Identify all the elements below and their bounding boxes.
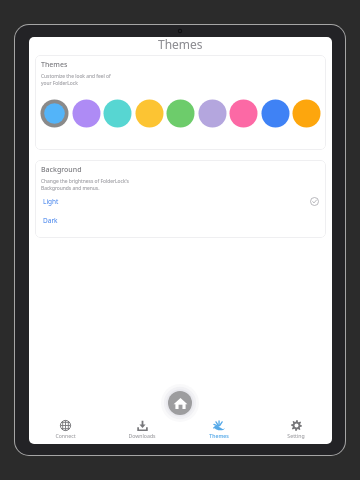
- staticText: Setting: [287, 432, 305, 439]
- staticText: Downloads: [128, 432, 156, 439]
- button[interactable]: [103, 99, 132, 128]
- staticText: Themes: [209, 432, 229, 439]
- staticText: Light: [43, 197, 59, 206]
- staticText: Connect: [55, 432, 76, 439]
- button[interactable]: [135, 99, 164, 128]
- button[interactable]: [198, 99, 227, 128]
- button[interactable]: Setting: [267, 415, 325, 443]
- button[interactable]: Downloads: [113, 415, 171, 443]
- staticText: Customize the look and feel of your Fold…: [41, 73, 111, 87]
- button[interactable]: Home: [168, 391, 192, 415]
- button[interactable]: Themes: [190, 415, 248, 443]
- button[interactable]: [261, 99, 290, 128]
- button[interactable]: Connect: [36, 415, 94, 443]
- button[interactable]: [229, 99, 258, 128]
- staticText: Background: [41, 165, 82, 175]
- button[interactable]: [40, 99, 69, 128]
- button[interactable]: Light: [35, 193, 326, 209]
- button[interactable]: [72, 99, 101, 128]
- staticText: Change the brightness of FolderLock's Ba…: [41, 178, 129, 192]
- button[interactable]: Dark: [35, 212, 326, 228]
- staticText: Dark: [43, 216, 58, 225]
- staticText: Themes: [41, 60, 68, 70]
- button[interactable]: [292, 99, 321, 128]
- button[interactable]: [166, 99, 195, 128]
- staticText: Themes: [158, 37, 203, 50]
